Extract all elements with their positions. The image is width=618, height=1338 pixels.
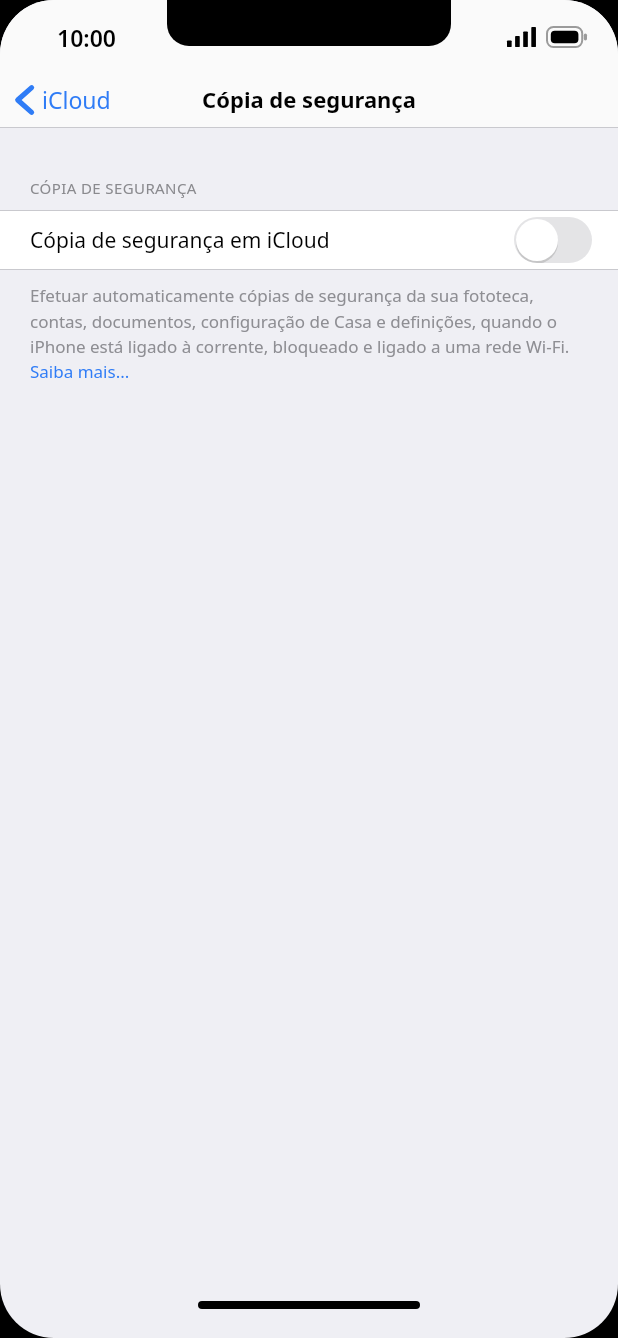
staticText: Cópia de segurança em iCloud <box>30 226 514 255</box>
other: Battery full <box>547 27 587 47</box>
other: Back to iCloud <box>16 86 33 114</box>
button[interactable]: Back to iCloud <box>0 78 125 121</box>
staticText: 10:00 <box>57 22 116 53</box>
staticText: iCloud <box>42 84 111 115</box>
button[interactable]: Cópia de segurança em iCloud, off <box>514 217 592 263</box>
staticText: Cópia de segurança <box>202 84 416 114</box>
button[interactable]: Cópia de segurança em iCloud <box>0 211 618 269</box>
other: Cellular signal full <box>507 27 537 47</box>
staticText: Efetuar automaticamente cópias de segura… <box>30 284 590 383</box>
staticText: CÓPIA DE SEGURANÇA <box>30 178 197 198</box>
